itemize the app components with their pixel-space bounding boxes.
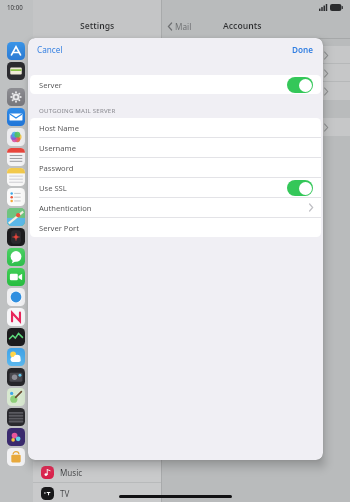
button[interactable]: App icon [7,128,25,146]
staticText: Username [39,143,76,153]
button[interactable]: App icon [7,188,25,206]
staticText: Server Port [39,223,79,233]
button[interactable]: App icon [7,62,25,80]
button[interactable]: App icon [7,168,25,186]
staticText: Music [60,467,83,478]
button[interactable]: Username [30,138,321,157]
button[interactable]: App icon [7,208,25,226]
button[interactable]: Host Name [30,118,321,137]
button[interactable]: Toggle on [287,180,313,196]
button[interactable]: App icon [7,248,25,266]
staticText: Settings [80,20,115,32]
staticText: Password [39,163,74,173]
button[interactable]: Toggle on [287,77,313,93]
staticText: Accounts [223,20,262,32]
staticText: Mail [175,21,192,32]
button[interactable]: App icon [7,308,25,326]
button[interactable]: App icon [7,368,25,386]
staticText: 10:00 [7,3,23,11]
button[interactable]: Done [292,44,314,55]
staticText: Server [39,80,62,90]
staticText: Done [292,44,314,55]
button[interactable]: Password [30,158,321,177]
staticText: Cancel [37,44,63,55]
button[interactable]: Server Port [30,218,321,237]
button[interactable]: App icon [7,328,25,346]
button[interactable]: App icon [7,88,25,106]
button[interactable]: App icon [7,108,25,126]
button[interactable]: App icon [7,42,25,60]
button[interactable]: App icon [7,388,25,406]
button[interactable]: App icon [7,408,25,426]
staticText: Host Name [39,123,79,133]
button[interactable]: Cancel [37,44,63,55]
button[interactable]: App icon [33,462,161,482]
button[interactable]: Authentication [30,198,321,217]
button[interactable]: App icon [41,466,54,479]
button[interactable]: App icon [7,148,25,166]
button[interactable]: App icon [7,228,25,246]
button[interactable]: App icon [33,483,161,502]
button[interactable]: App icon [7,448,25,466]
button[interactable]: Server [30,75,321,94]
staticText: Use SSL [39,183,67,193]
button[interactable]: App icon [7,268,25,286]
button[interactable]: App icon [7,288,25,306]
button[interactable]: App icon [41,487,54,500]
button[interactable]: Use SSL [30,178,321,197]
staticText: OUTGOING MAIL SERVER [39,106,116,114]
button[interactable]: App icon [7,348,25,366]
button[interactable]: App icon [7,428,25,446]
staticText: TV [60,488,70,499]
staticText: Authentication [39,203,92,213]
